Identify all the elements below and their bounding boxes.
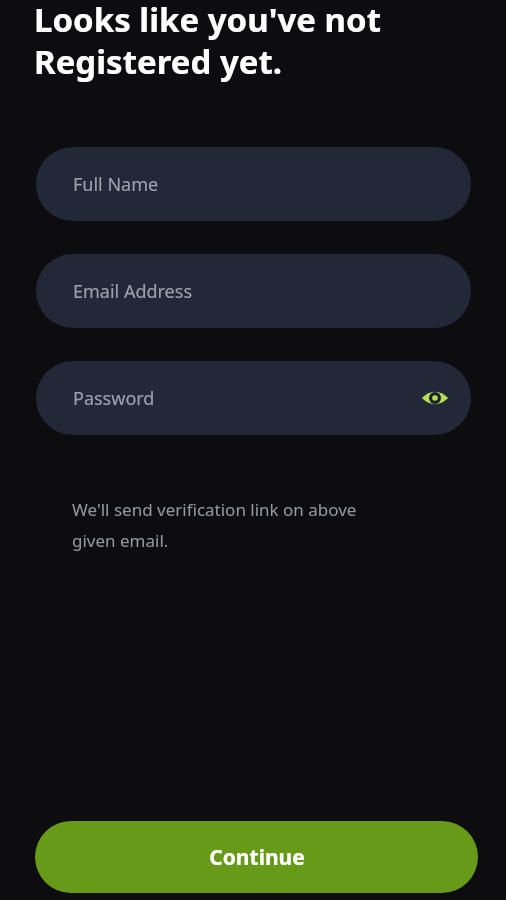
staticText: We'll send verification link on above gi… [72, 498, 357, 552]
button[interactable]: Show password [416, 379, 454, 417]
staticText: Full Name [73, 172, 159, 197]
button[interactable]: Continue [35, 821, 478, 893]
staticText: Password [73, 386, 155, 411]
staticText: Email Address [73, 279, 193, 304]
staticText: Looks like you've not Registered yet. [34, 0, 381, 84]
button[interactable]: Email Address [36, 254, 471, 328]
button[interactable]: Full Name [36, 147, 471, 221]
staticText: Continue [209, 843, 305, 872]
button[interactable]: Password [36, 361, 471, 435]
